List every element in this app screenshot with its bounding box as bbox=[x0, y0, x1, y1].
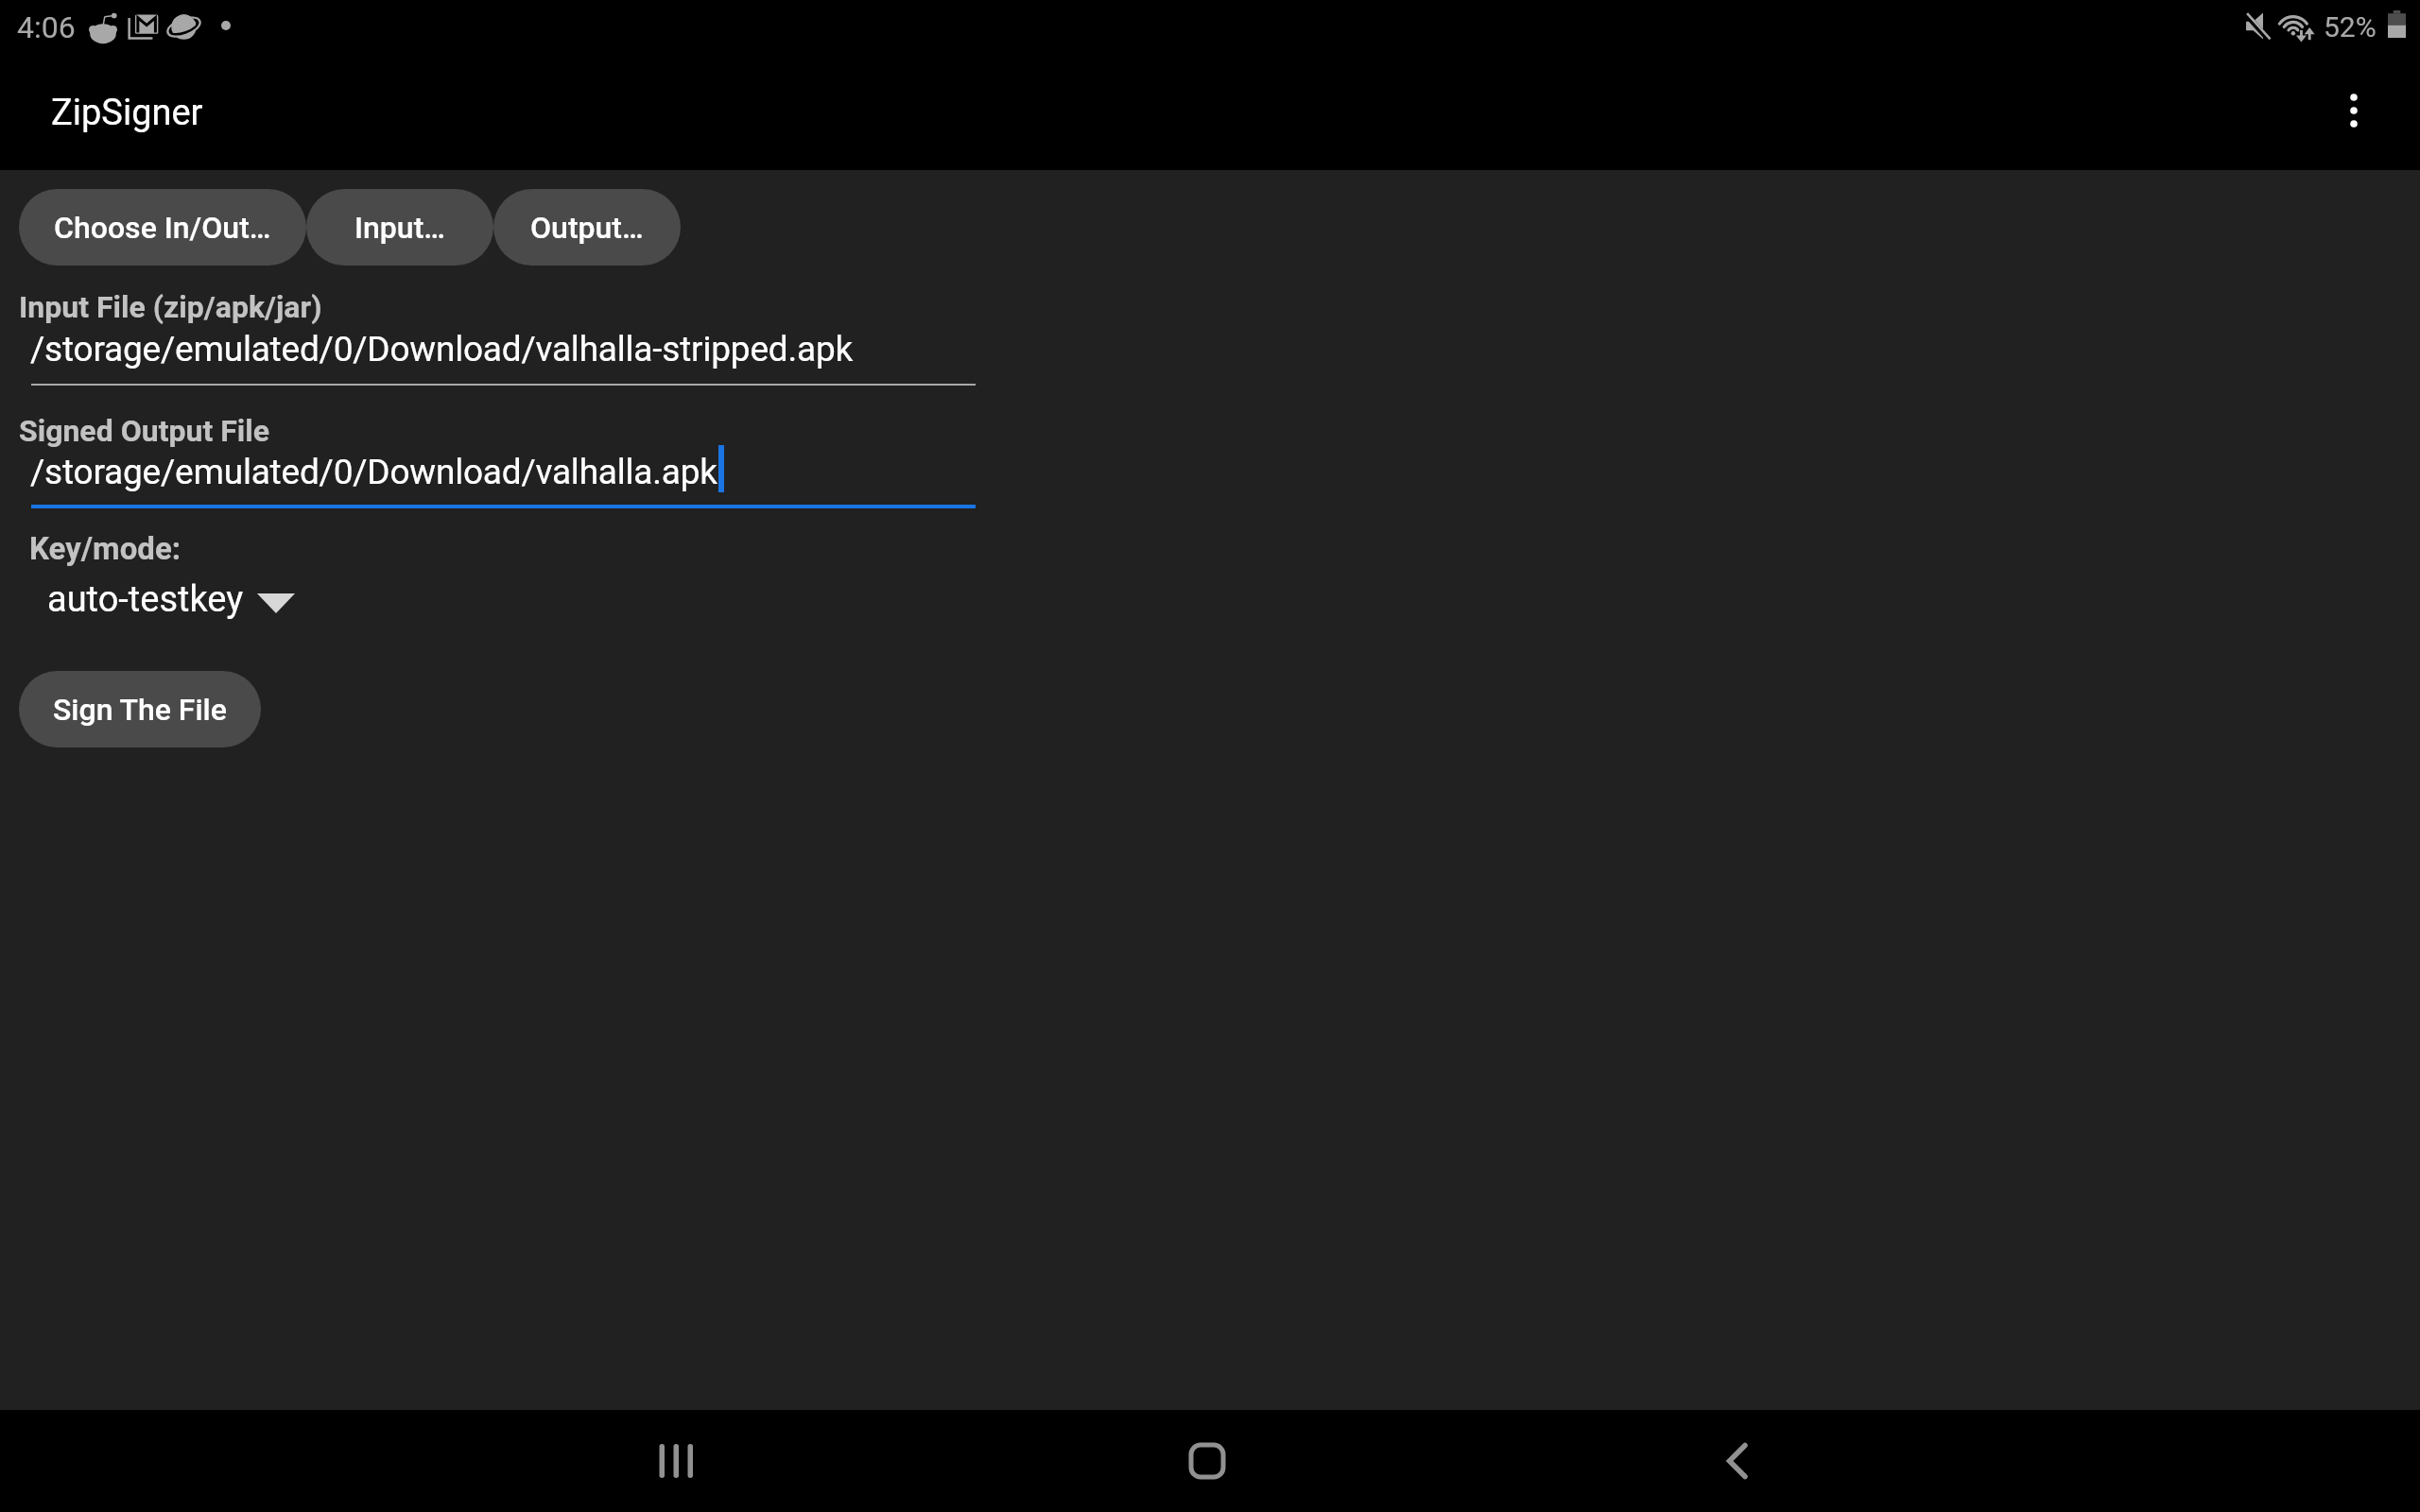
staticText: ZipSigner bbox=[51, 92, 203, 134]
staticText: Signed Output File bbox=[19, 413, 270, 449]
staticText: /storage/emulated/0/Download/valhalla.ap… bbox=[30, 452, 717, 492]
button[interactable]: Input… bbox=[306, 189, 493, 266]
staticText: Output… bbox=[530, 210, 644, 246]
staticText: Input File (zip/apk/jar) bbox=[19, 289, 322, 325]
button[interactable]: Home bbox=[1156, 1410, 1258, 1512]
staticText: auto-testkey bbox=[47, 578, 244, 621]
button[interactable]: Key/mode selector bbox=[38, 572, 302, 630]
button[interactable]: Back bbox=[1687, 1410, 1789, 1512]
staticText: 4:06 bbox=[17, 9, 76, 45]
staticText: 52% bbox=[2324, 10, 2377, 43]
button[interactable]: More options bbox=[2316, 59, 2392, 134]
staticText: /storage/emulated/0/Download/valhalla-st… bbox=[30, 329, 854, 369]
button[interactable]: Sign The File bbox=[19, 671, 261, 747]
staticText: Input… bbox=[354, 210, 445, 246]
button[interactable]: Output… bbox=[493, 189, 681, 266]
staticText: Sign The File bbox=[53, 692, 227, 728]
button[interactable]: Recent apps bbox=[624, 1410, 726, 1512]
button[interactable]: Choose In/Out… bbox=[19, 189, 306, 266]
staticText: Key/mode: bbox=[29, 530, 181, 567]
staticText: Choose In/Out… bbox=[54, 210, 271, 246]
